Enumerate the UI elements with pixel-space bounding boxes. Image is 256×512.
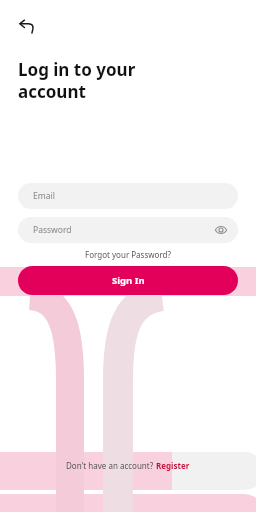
button[interactable]: Show password (212, 221, 230, 239)
staticText: Log in to your account (18, 58, 136, 103)
staticText: Email (33, 190, 55, 202)
button[interactable]: Register (156, 460, 190, 471)
button[interactable]: Password (18, 217, 238, 243)
staticText: Sign In (112, 274, 145, 287)
staticText: Register (156, 460, 190, 471)
button[interactable]: Email (18, 183, 238, 209)
staticText: Don't have an account? (66, 460, 156, 471)
button[interactable]: Back (13, 13, 41, 41)
button[interactable]: Forgot your Password? (81, 247, 175, 262)
button[interactable]: Sign In (18, 266, 238, 295)
staticText: Password (33, 224, 72, 236)
